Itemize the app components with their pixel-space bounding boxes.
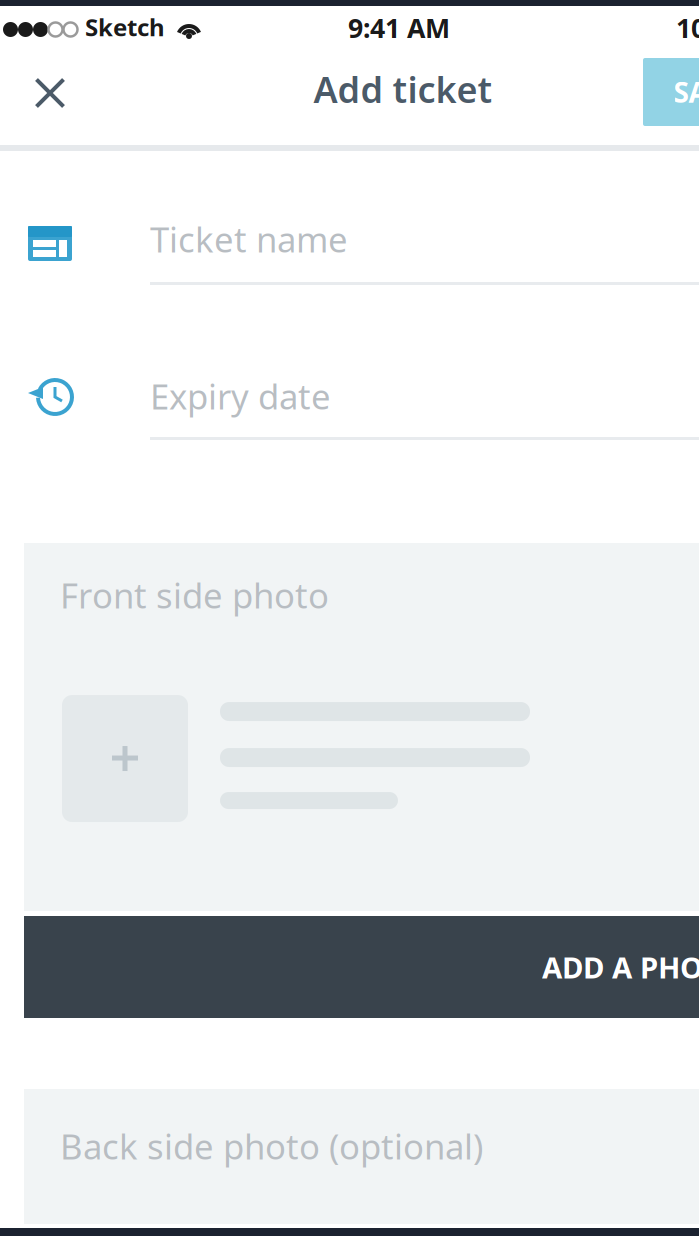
button[interactable]: Expiry date bbox=[0, 285, 699, 442]
staticText: Back side photo (optional) bbox=[60, 1123, 483, 1169]
button[interactable]: Add ticket bbox=[303, 65, 503, 113]
staticText: SAVE bbox=[673, 73, 699, 111]
button[interactable]: SAVE bbox=[643, 58, 699, 126]
staticText: Ticket name bbox=[150, 216, 348, 262]
button[interactable]: Close bbox=[17, 62, 83, 124]
staticText: 9:41 AM bbox=[348, 10, 450, 45]
staticText: ADD A PHOTO bbox=[542, 947, 699, 986]
staticText: Add ticket bbox=[313, 65, 492, 113]
button[interactable]: ADD A PHOTO bbox=[24, 916, 699, 1018]
button[interactable]: Ticket name bbox=[0, 151, 699, 285]
staticText: Front side photo bbox=[60, 572, 329, 618]
staticText: 100% bbox=[676, 10, 699, 45]
staticText: Sketch bbox=[85, 11, 165, 43]
staticText: Expiry date bbox=[150, 373, 331, 419]
